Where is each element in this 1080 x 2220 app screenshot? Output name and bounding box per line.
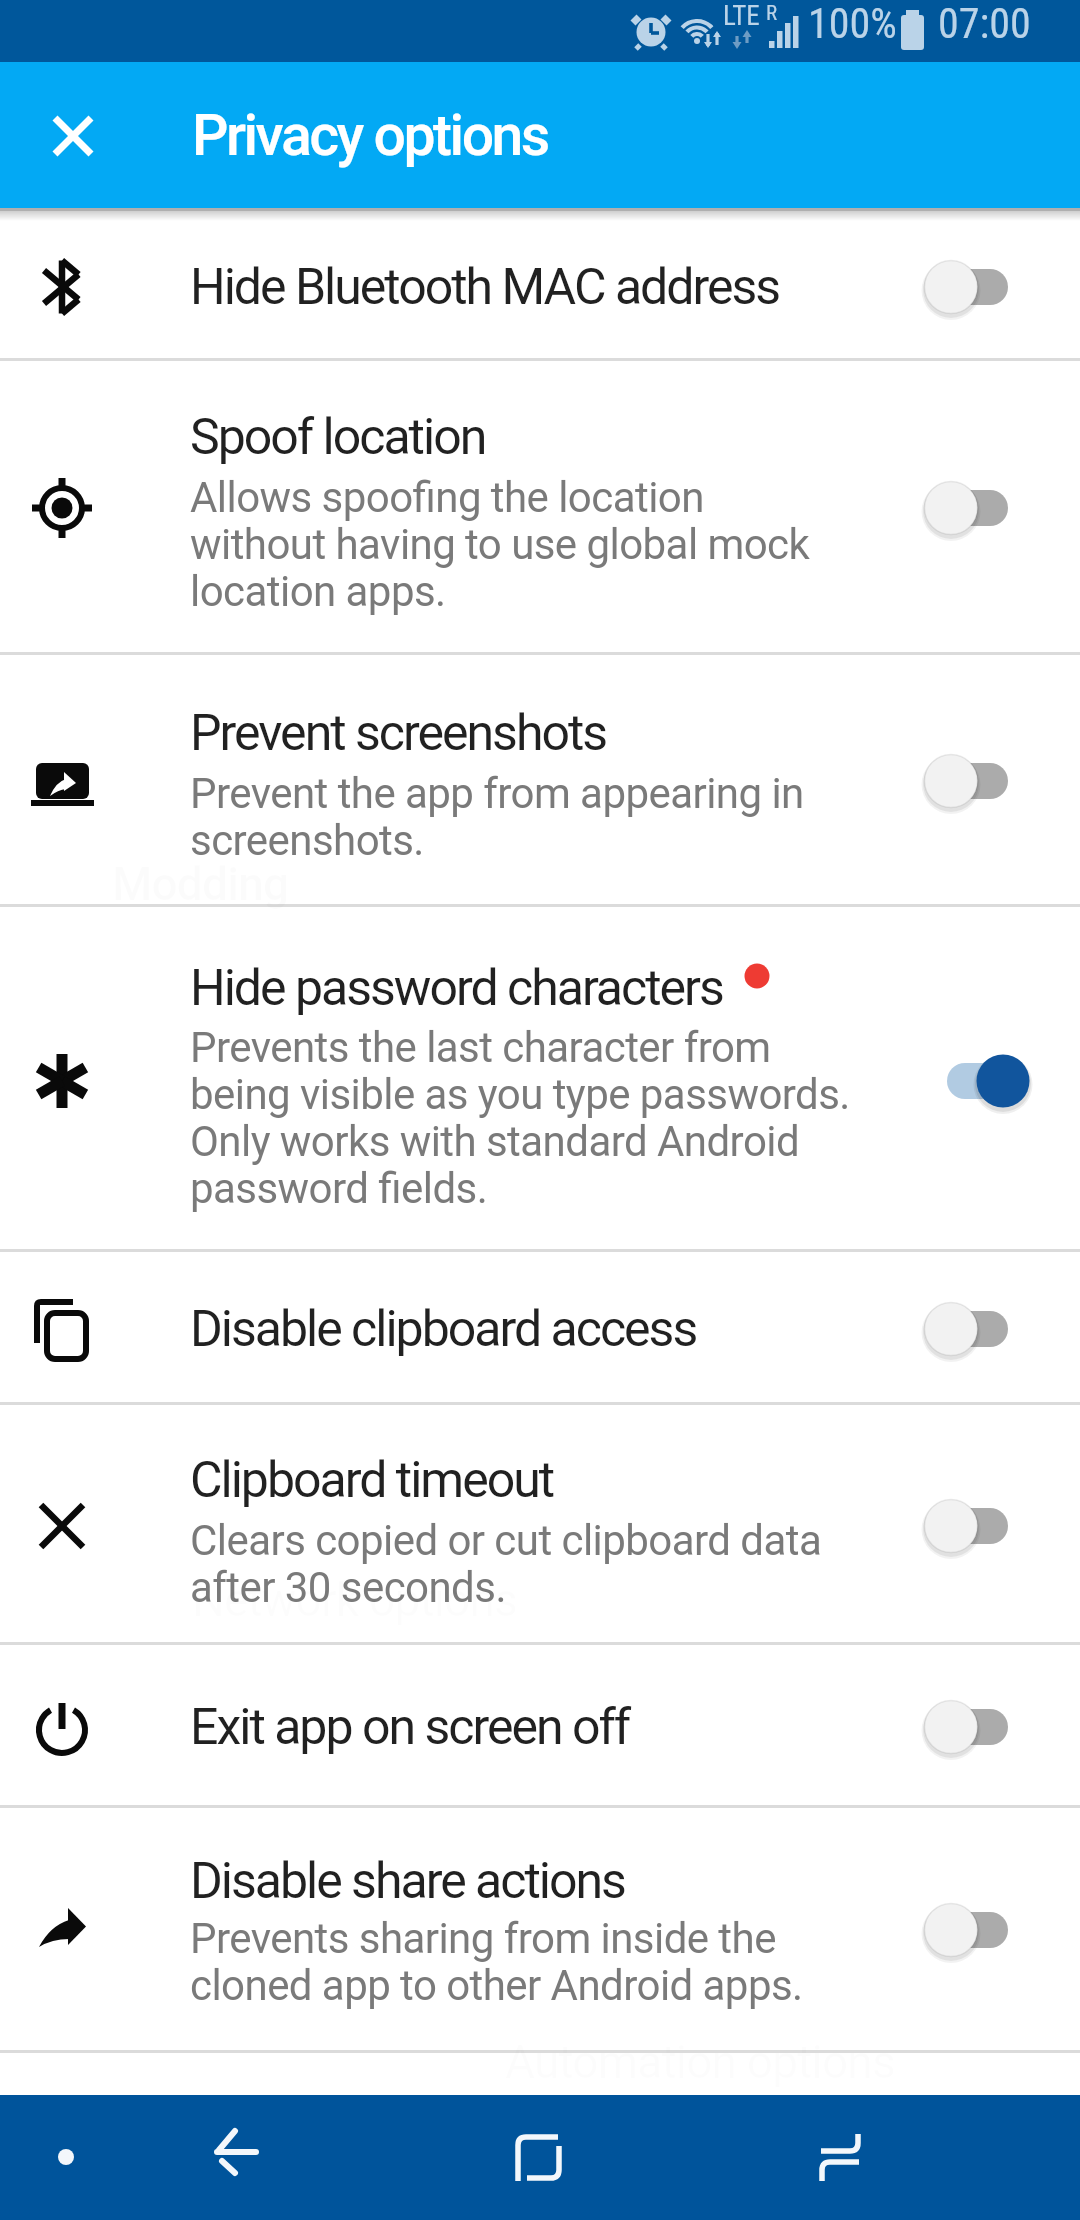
- staticText: Clipboard timeout: [190, 1451, 554, 1510]
- staticText: Spoof location: [190, 408, 486, 467]
- button[interactable]: [0, 214, 1080, 361]
- staticText: after 30 seconds.: [190, 1563, 506, 1612]
- staticText: 07:00: [938, 0, 1031, 48]
- staticText: 100%: [808, 0, 897, 48]
- staticText: Allows spoofing the location: [190, 473, 704, 522]
- button[interactable]: [920, 1496, 1035, 1556]
- staticText: R: [766, 1, 778, 26]
- staticText: Prevents the last character from: [190, 1023, 771, 1072]
- button[interactable]: [790, 2107, 890, 2207]
- button[interactable]: [183, 2107, 283, 2207]
- button[interactable]: [0, 1405, 1080, 1645]
- staticText: Disable clipboard access: [190, 1300, 697, 1359]
- button[interactable]: [920, 1900, 1035, 1960]
- button[interactable]: [920, 751, 1035, 811]
- staticText: location apps.: [190, 567, 446, 616]
- staticText: Network options: [192, 1573, 518, 1627]
- staticText: screenshots.: [190, 816, 424, 865]
- button[interactable]: [45, 108, 101, 164]
- staticText: password fields.: [190, 1164, 488, 1213]
- button[interactable]: [0, 361, 1080, 655]
- staticText: Hide Bluetooth MAC address: [190, 258, 780, 317]
- staticText: Modding: [112, 857, 289, 911]
- button[interactable]: [488, 2107, 588, 2207]
- button[interactable]: [0, 907, 1080, 1252]
- button[interactable]: [920, 1051, 1035, 1111]
- button[interactable]: [920, 1299, 1035, 1359]
- button[interactable]: [0, 1252, 1080, 1405]
- button[interactable]: [0, 1808, 1080, 2053]
- staticText: being visible as you type passwords.: [190, 1070, 850, 1119]
- button[interactable]: [42, 2133, 90, 2181]
- staticText: without having to use global mock: [190, 520, 810, 569]
- staticText: LTE: [723, 0, 760, 32]
- button[interactable]: [0, 1645, 1080, 1808]
- staticText: Prevents sharing from inside the: [190, 1914, 776, 1963]
- staticText: Prevent the app from appearing in: [190, 769, 804, 818]
- button[interactable]: [920, 1697, 1035, 1757]
- staticText: Privacy options: [192, 102, 548, 169]
- staticText: Hide password characters: [190, 959, 723, 1018]
- button[interactable]: [920, 257, 1035, 317]
- staticText: Automation options: [505, 2035, 895, 2089]
- button[interactable]: [0, 655, 1080, 907]
- staticText: Disable share actions: [190, 1852, 625, 1911]
- staticText: cloned app to other Android apps.: [190, 1961, 803, 2010]
- staticText: Prevent screenshots: [190, 704, 607, 763]
- button[interactable]: [920, 478, 1035, 538]
- staticText: Only works with standard Android: [190, 1117, 800, 1166]
- staticText: Exit app on screen off: [190, 1698, 630, 1757]
- staticText: Clears copied or cut clipboard data: [190, 1516, 822, 1565]
